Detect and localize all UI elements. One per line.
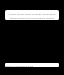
staticText: adipiscing elit sed do eiusmod tempor <box>6 16 58 19</box>
staticText: Search something here <box>6 64 34 67</box>
button[interactable]: Lorem ipsum dolor sit amet consectetur <box>5 10 59 20</box>
staticText: Lorem ipsum dolor sit amet consectetur <box>6 12 58 15</box>
button[interactable]: Search something here <box>5 63 59 67</box>
